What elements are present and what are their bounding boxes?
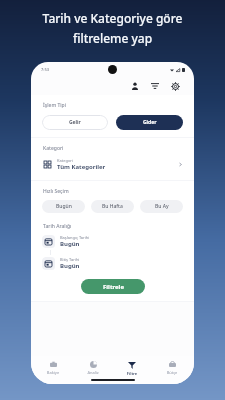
staticText: 7:53 xyxy=(41,67,49,72)
button[interactable]: Gider xyxy=(116,115,183,130)
staticText: Bugün xyxy=(60,240,80,248)
button[interactable]: Bitiş Tarihi xyxy=(42,257,183,270)
button[interactable]: Gelir xyxy=(42,115,108,130)
button[interactable]: Bu Hafta xyxy=(91,200,134,213)
staticText: Bu Hafta xyxy=(102,203,123,210)
staticText: Bugün xyxy=(60,262,80,270)
staticText: Analiz xyxy=(76,370,110,375)
staticText: Kategori xyxy=(57,158,73,163)
staticText: Başlangıç Tarihi xyxy=(60,235,90,240)
staticText: Tarih ve Kategoriye göre xyxy=(0,10,225,26)
staticText: İşlem Tipi xyxy=(43,102,67,109)
staticText: Tüm Kategoriler xyxy=(57,163,106,171)
staticText: Bitiş Tarihi xyxy=(60,257,80,262)
button[interactable]: Bugün xyxy=(42,200,85,213)
staticText: Bakiye xyxy=(36,370,70,375)
staticText: Tarih Aralığı xyxy=(43,223,72,230)
button[interactable]: Kategori xyxy=(42,156,183,173)
button[interactable]: Bu Ay xyxy=(140,200,183,213)
staticText: Filtrele xyxy=(103,283,124,291)
button[interactable]: Başlangıç Tarihi xyxy=(42,235,183,248)
staticText: Filtre xyxy=(115,371,149,376)
staticText: Bütçe xyxy=(155,370,189,375)
staticText: filtreleme yap xyxy=(0,30,225,46)
staticText: Gelir xyxy=(69,119,81,126)
button[interactable]: Filtre xyxy=(115,360,149,377)
button[interactable]: Profil xyxy=(128,79,142,93)
button[interactable]: Filtrele xyxy=(81,279,145,294)
button[interactable]: Bütçe xyxy=(155,360,189,376)
staticText: Gider xyxy=(143,119,157,126)
button[interactable]: Bakiye xyxy=(36,360,70,376)
staticText: Kategori xyxy=(43,145,64,152)
staticText: Bugün xyxy=(56,203,72,210)
staticText: Bu Ay xyxy=(155,203,169,210)
button[interactable]: Analiz xyxy=(76,360,110,376)
button[interactable]: Ayarlar xyxy=(168,79,182,93)
staticText: Hızlı Seçim xyxy=(43,188,69,195)
button[interactable]: Filtrele xyxy=(148,79,162,93)
